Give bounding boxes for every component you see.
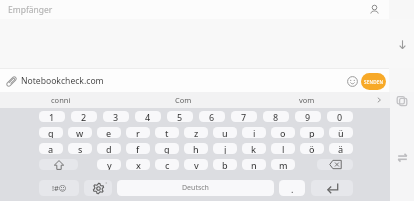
button[interactable]: 3 [103, 111, 129, 122]
button[interactable]: 1 [39, 111, 65, 122]
staticText: 0 [337, 111, 343, 122]
staticText: 1 [49, 111, 55, 122]
button[interactable]: 9 [295, 111, 321, 122]
button[interactable]: Expand recipients [393, 35, 411, 53]
button[interactable]: v [184, 159, 208, 170]
button[interactable]: q [39, 127, 63, 138]
button[interactable]: 8 [263, 111, 289, 122]
staticText: o [280, 127, 286, 138]
button[interactable]: Backspace [317, 159, 353, 170]
button[interactable]: ä [329, 143, 353, 154]
button[interactable]: Floating keyboard [393, 92, 411, 110]
staticText: 5 [177, 111, 183, 122]
button[interactable]: g [155, 143, 179, 154]
staticText: s [78, 143, 83, 154]
staticText: v [194, 159, 199, 170]
button[interactable]: ü [329, 127, 353, 138]
staticText: 3 [113, 111, 119, 122]
staticText: r [136, 127, 140, 138]
staticText: 4 [145, 111, 151, 122]
staticText: 6 [209, 111, 215, 122]
staticText: conni [51, 95, 71, 105]
staticText: k [251, 143, 257, 154]
button[interactable]: Keyboard settings [84, 180, 112, 196]
button[interactable]: vom [245, 92, 368, 108]
button[interactable]: u [213, 127, 237, 138]
button[interactable]: b [213, 159, 237, 170]
button[interactable]: r [126, 127, 150, 138]
staticText: x [136, 159, 141, 170]
staticText: c [165, 159, 170, 170]
staticText: Deutsch [182, 183, 209, 193]
staticText: ö [309, 143, 315, 154]
button[interactable]: k [242, 143, 266, 154]
staticText: SENDEN [364, 79, 384, 85]
staticText: b [222, 159, 228, 170]
button[interactable]: Emoji [345, 74, 359, 88]
button[interactable]: Attach file [2, 72, 20, 90]
button[interactable]: SENDEN [361, 73, 386, 90]
staticText: Notebookcheck.com [21, 75, 104, 87]
button[interactable]: ö [300, 143, 324, 154]
staticText: 2 [81, 111, 87, 122]
staticText: u [222, 127, 228, 138]
button[interactable]: p [300, 127, 324, 138]
button[interactable]: 6 [199, 111, 225, 122]
staticText: d [106, 143, 112, 154]
button[interactable]: o [271, 127, 295, 138]
staticText: t [165, 127, 169, 138]
button[interactable]: 7 [231, 111, 257, 122]
staticText: w [76, 127, 84, 138]
button[interactable]: a [39, 143, 63, 154]
staticText: y [107, 159, 112, 170]
staticText: 7 [241, 111, 247, 122]
button[interactable]: t [155, 127, 179, 138]
button[interactable]: Switch input method [393, 148, 411, 166]
staticText: g [164, 143, 170, 154]
staticText: f [136, 143, 140, 154]
button[interactable]: s [68, 143, 92, 154]
button[interactable]: 0 [327, 111, 353, 122]
staticText: h [193, 143, 199, 154]
button[interactable]: Enter [311, 180, 353, 196]
staticText: Empfänger [8, 4, 53, 16]
staticText: e [106, 127, 112, 138]
button[interactable]: 4 [135, 111, 161, 122]
staticText: m [279, 159, 288, 170]
staticText: !#☺ [52, 183, 67, 193]
staticText: ü [338, 127, 344, 138]
button[interactable]: y [97, 159, 121, 170]
staticText: Com [175, 95, 192, 105]
button[interactable]: x [126, 159, 150, 170]
staticText: ä [338, 143, 344, 154]
button[interactable]: Com [122, 92, 245, 108]
button[interactable]: Add recipient [366, 1, 383, 18]
button[interactable]: l [271, 143, 295, 154]
button[interactable]: m [271, 159, 295, 170]
staticText: l [282, 143, 285, 154]
button[interactable]: z [184, 127, 208, 138]
staticText: 9 [305, 111, 311, 122]
button[interactable]: Deutsch [117, 180, 274, 196]
button[interactable]: f [126, 143, 150, 154]
button[interactable]: conni [0, 92, 122, 108]
staticText: n [251, 159, 257, 170]
staticText: . [291, 183, 294, 195]
staticText: p [309, 127, 315, 138]
staticText: z [194, 127, 199, 138]
button[interactable]: j [213, 143, 237, 154]
button[interactable]: h [184, 143, 208, 154]
button[interactable]: 5 [167, 111, 193, 122]
button[interactable]: e [97, 127, 121, 138]
button[interactable]: c [155, 159, 179, 170]
button[interactable]: 2 [71, 111, 97, 122]
button[interactable]: w [68, 127, 92, 138]
staticText: q [48, 127, 54, 138]
button[interactable]: i [242, 127, 266, 138]
button[interactable]: Shift [39, 159, 78, 170]
button[interactable]: Symbols [39, 180, 79, 196]
button[interactable]: n [242, 159, 266, 170]
button[interactable]: More suggestions [368, 92, 390, 108]
button[interactable]: . [279, 180, 305, 196]
button[interactable]: d [97, 143, 121, 154]
